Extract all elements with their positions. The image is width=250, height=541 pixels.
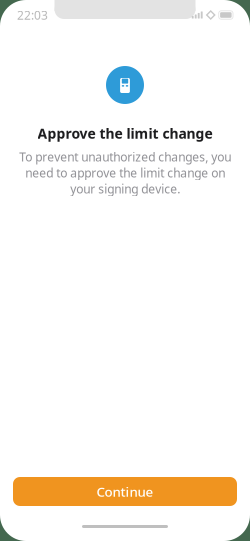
staticText: 22:03 [17, 7, 48, 23]
staticText: Approve the limit change [37, 124, 212, 143]
staticText: To prevent unauthorized changes, you nee… [19, 149, 231, 197]
staticText: Continue [96, 483, 153, 500]
button[interactable]: Continue [13, 477, 237, 506]
